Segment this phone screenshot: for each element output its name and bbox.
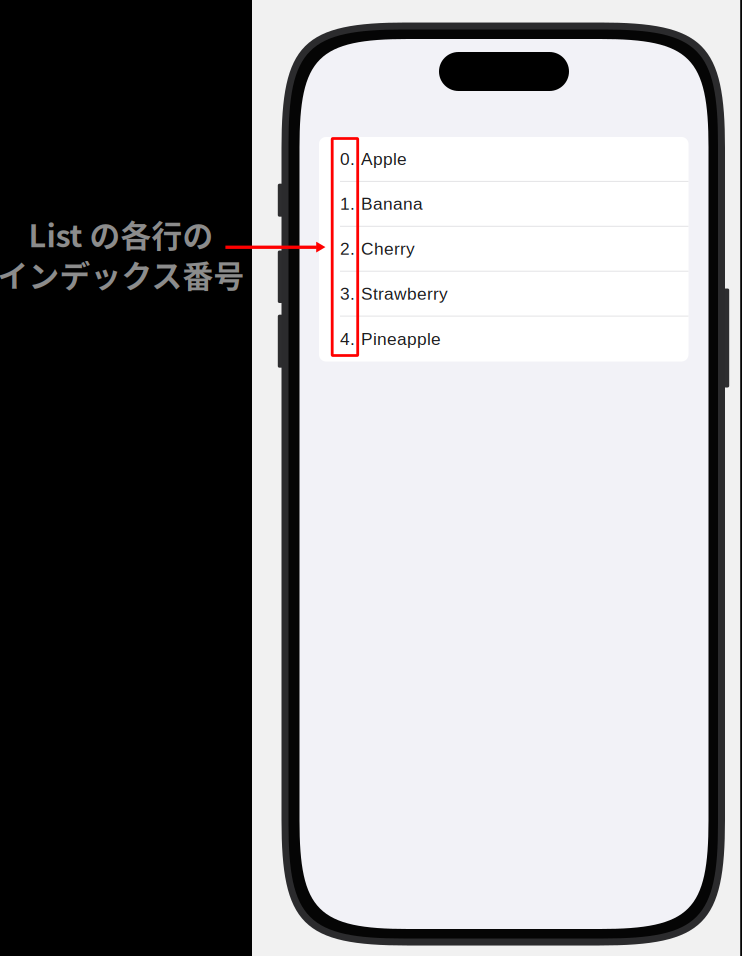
staticText: Apple bbox=[361, 149, 407, 169]
button[interactable]: 2. bbox=[319, 227, 688, 271]
staticText: Pineapple bbox=[361, 329, 441, 349]
staticText: List の各行の bbox=[28, 212, 213, 256]
staticText: インデックス番号 bbox=[0, 252, 244, 296]
staticText: Strawberry bbox=[361, 284, 448, 303]
button[interactable]: 4. bbox=[319, 317, 688, 361]
button[interactable]: 3. bbox=[319, 272, 688, 316]
staticText: Banana bbox=[361, 194, 423, 214]
staticText: 1. bbox=[340, 194, 355, 214]
staticText: 4. bbox=[340, 329, 355, 349]
button[interactable]: 0. bbox=[319, 137, 688, 181]
staticText: Cherry bbox=[361, 239, 415, 258]
staticText: 3. bbox=[340, 284, 355, 303]
staticText: 2. bbox=[340, 239, 355, 258]
button[interactable]: 1. bbox=[319, 182, 688, 226]
staticText: 0. bbox=[340, 149, 355, 169]
